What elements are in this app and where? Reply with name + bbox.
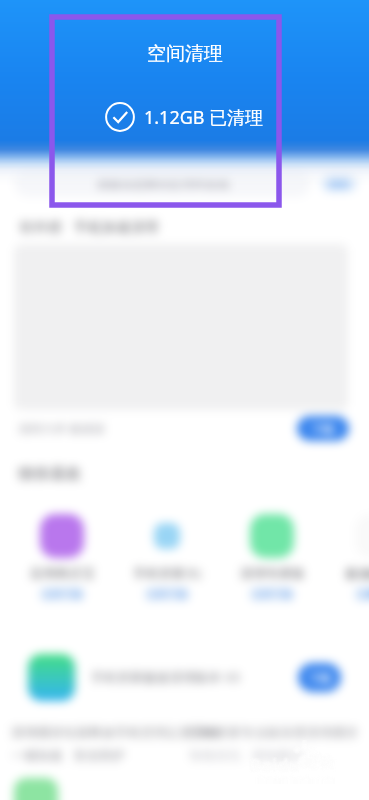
staticText: 手机管家极速清理版本 V3 — [91, 668, 240, 686]
staticText: 1.12GB 已清理 — [144, 105, 264, 130]
staticText: 立即下载 — [147, 588, 187, 601]
staticText: 下载 — [309, 671, 331, 685]
staticText: 极速浏览器 — [345, 565, 369, 581]
button[interactable]: 搜索你想要的应用和游戏 — [14, 169, 311, 197]
staticText: 立即下载 — [252, 588, 292, 601]
button[interactable]: 软件榜 — [20, 219, 62, 237]
staticText: 下载 — [312, 422, 334, 436]
staticText: 手机管家大师 — [133, 565, 201, 581]
staticText: 搜索你想要的应用和游戏 — [97, 176, 229, 191]
staticText: 一键加速 安全防护 — [11, 746, 126, 764]
button[interactable]: 极速浏览器 — [343, 511, 369, 601]
staticText: Baidu — [249, 753, 301, 778]
button[interactable]: 下载 — [298, 663, 341, 692]
staticText: 立即下载 — [42, 588, 82, 601]
staticText: 空间清理 — [147, 42, 223, 66]
staticText: 应用商店宝 — [30, 565, 95, 581]
button[interactable]: 应用商店宝 — [28, 511, 96, 601]
button[interactable]: 下载 — [297, 416, 349, 441]
button[interactable]: 手机管家大师 — [133, 511, 201, 601]
staticText: 手机管家专业版深度清理缓存 — [189, 724, 358, 740]
staticText: 清理专家版 — [240, 565, 305, 581]
staticText: 清理缓存垃圾释放手机空间让更流畅 — [11, 724, 219, 740]
button[interactable]: 手机加速清理 — [74, 219, 158, 237]
staticText: 清理大师 极速版 — [18, 420, 106, 436]
button[interactable]: 清理专家版 — [238, 511, 306, 601]
staticText: 立即下载 — [357, 588, 369, 601]
button[interactable]: 搜索 — [321, 174, 357, 192]
staticText: 智能优化 省电模式 — [189, 746, 304, 764]
staticText: 搜索 — [329, 177, 349, 190]
staticText: 猜你喜欢 — [18, 464, 82, 484]
